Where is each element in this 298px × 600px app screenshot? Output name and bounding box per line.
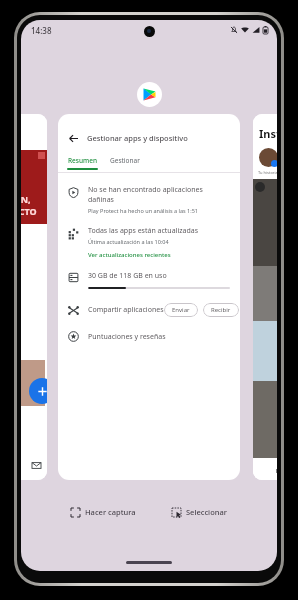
button[interactable]: Compartir aplicaciones <box>58 303 240 317</box>
staticText: Hacer captura <box>85 507 136 517</box>
staticText: Insta <box>259 126 277 141</box>
staticText: Enviar <box>172 306 190 314</box>
button[interactable]: Gestionar <box>110 156 140 165</box>
button[interactable]: No se han encontrado aplicaciones dañina… <box>58 185 240 214</box>
button[interactable]: Google Play <box>137 82 162 107</box>
staticText: Play Protect ha hecho un análisis a las … <box>88 207 198 214</box>
button[interactable]: Seleccionar <box>168 503 231 521</box>
button[interactable]: Recibir <box>203 303 239 317</box>
button[interactable]: Resumen <box>67 156 98 170</box>
button[interactable]: Puntuaciones y reseñas <box>58 331 240 342</box>
staticText: AGÓN, <box>21 193 31 205</box>
staticText: Puntuaciones y reseñas <box>88 332 166 342</box>
button[interactable]: Hacer captura <box>67 503 140 521</box>
button[interactable]: Atrás <box>65 130 81 146</box>
button[interactable]: Redactar <box>29 378 47 404</box>
staticText: Compartir aplicaciones <box>88 305 164 315</box>
staticText: 30 GB de 118 GB en uso <box>88 271 167 281</box>
button[interactable]: Enviar <box>164 303 198 317</box>
button[interactable]: Todas las apps están actualizadas <box>58 226 240 259</box>
button[interactable]: 30 GB de 118 GB en uso <box>58 271 240 289</box>
staticText: Gestionar <box>110 156 140 165</box>
button[interactable]: Ver actualizaciones recientes <box>88 251 171 259</box>
staticText: OYECTO <box>21 205 37 217</box>
staticText: Todas las apps están actualizadas <box>88 226 199 236</box>
button[interactable]: Inicio <box>276 464 277 474</box>
staticText: 14:38 <box>31 25 52 36</box>
staticText: Resumen <box>68 156 98 165</box>
button[interactable]: Correo <box>31 460 41 470</box>
staticText: Seleccionar <box>186 507 227 517</box>
staticText: Última actualización a las 10:04 <box>88 238 169 245</box>
button[interactable]: Insta <box>253 114 277 480</box>
button[interactable]: de Javier <box>21 114 47 480</box>
staticText: No se han encontrado aplicaciones dañina… <box>88 185 230 205</box>
staticText: Gestionar apps y dispositivo <box>87 133 188 143</box>
staticText: Tu historia <box>258 170 277 175</box>
button[interactable]: Atrás <box>58 114 240 480</box>
staticText: Recibir <box>211 306 231 314</box>
